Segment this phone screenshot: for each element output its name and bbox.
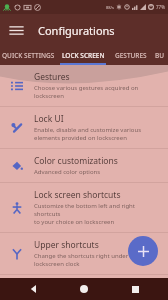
staticText: Color customizations — [34, 155, 118, 167]
staticText: GESTURES — [115, 51, 147, 60]
staticText: BU — [155, 51, 165, 60]
button[interactable]: QUICK SETTINGS — [0, 46, 56, 65]
button[interactable]: Recent apps — [118, 278, 152, 300]
staticText: Lock screen shortcuts — [34, 189, 121, 201]
staticText: Enable, disable and customize various el… — [34, 126, 142, 142]
button[interactable]: BU — [152, 46, 168, 65]
button[interactable]: Lock screen shortcuts — [0, 183, 168, 232]
button[interactable]: Back — [17, 278, 51, 300]
button[interactable]: Add — [128, 236, 158, 266]
staticText: Advanced color options — [34, 168, 101, 176]
button[interactable]: Home — [67, 278, 101, 300]
button[interactable]: Lock UI — [0, 107, 168, 148]
button[interactable]: Upper shortcuts — [0, 233, 168, 274]
staticText: 77% — [156, 4, 165, 10]
staticText: Customize the bottom left and right shor… — [34, 202, 162, 226]
button[interactable]: Open navigation menu — [0, 14, 32, 46]
button[interactable]: Gestures — [0, 65, 168, 106]
staticText: Gestures — [34, 71, 70, 83]
staticText: QUICK SETTINGS — [2, 51, 55, 60]
staticText: Upper shortcuts — [34, 239, 99, 251]
staticText: LOCK SCREEN — [62, 51, 105, 60]
staticText: Choose various gestures acquired on lock… — [34, 84, 139, 100]
button[interactable]: GESTURES — [110, 46, 152, 65]
staticText: Lock UI — [34, 113, 64, 125]
staticText: 88/s — [106, 5, 114, 10]
button[interactable]: LOCK SCREEN — [56, 46, 110, 65]
staticText: Change the shortcuts right under the loc… — [34, 252, 140, 268]
staticText: Configurations — [38, 23, 115, 38]
button[interactable]: Color customizations — [0, 149, 168, 182]
